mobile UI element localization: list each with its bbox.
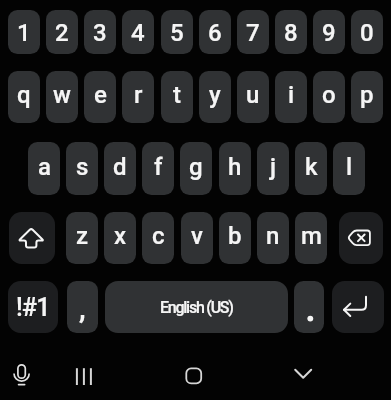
staticText: l (346, 153, 353, 181)
staticText: 7 (246, 19, 260, 47)
button[interactable]: j (257, 142, 289, 195)
button[interactable]: !#1 (8, 281, 58, 333)
staticText: 0 (360, 19, 374, 47)
staticText: t (173, 81, 181, 109)
staticText: s (76, 153, 89, 181)
staticText: !#1 (16, 293, 50, 322)
button[interactable]: 8 (275, 10, 307, 54)
button[interactable]: r (122, 71, 154, 123)
button[interactable]: m (295, 212, 327, 264)
button[interactable]: o (313, 71, 345, 123)
button[interactable]: e (84, 71, 116, 123)
button[interactable]: y (199, 71, 231, 123)
button[interactable] (6, 360, 38, 392)
button[interactable]: 7 (237, 10, 269, 54)
staticText: p (360, 81, 374, 109)
button[interactable]: 1 (8, 10, 40, 54)
button[interactable]: p (351, 71, 383, 123)
button[interactable] (339, 212, 383, 264)
staticText: a (38, 153, 51, 181)
staticText: g (189, 153, 203, 181)
button[interactable]: k (295, 142, 327, 195)
button[interactable]: b (219, 212, 251, 264)
button[interactable] (332, 281, 384, 333)
staticText: 6 (208, 19, 222, 47)
staticText: b (228, 222, 242, 250)
button[interactable] (294, 281, 324, 333)
button[interactable]: h (219, 142, 251, 195)
staticText: 9 (322, 19, 336, 47)
button[interactable] (287, 360, 319, 392)
staticText: w (53, 81, 71, 109)
button[interactable]: q (8, 71, 40, 123)
button[interactable]: s (66, 142, 98, 195)
staticText: h (228, 153, 242, 181)
button[interactable]: v (181, 212, 213, 264)
button[interactable]: x (104, 212, 136, 264)
staticText: English (US) (160, 298, 233, 317)
button[interactable] (9, 212, 55, 264)
staticText: n (266, 222, 280, 250)
button[interactable]: c (142, 212, 174, 264)
staticText: y (209, 81, 221, 109)
staticText: z (76, 222, 89, 250)
staticText: e (94, 81, 107, 109)
button[interactable] (178, 360, 210, 392)
button[interactable]: a (28, 142, 60, 195)
button[interactable]: f (142, 142, 174, 195)
button[interactable]: 2 (46, 10, 78, 54)
staticText: m (301, 222, 322, 250)
staticText: o (322, 81, 336, 109)
button[interactable]: 9 (313, 10, 345, 54)
button[interactable]: d (104, 142, 136, 195)
button[interactable] (68, 360, 100, 392)
staticText: i (288, 81, 295, 109)
staticText: v (191, 222, 203, 250)
button[interactable]: 0 (351, 10, 383, 54)
button[interactable]: t (161, 71, 193, 123)
staticText: c (152, 222, 165, 250)
button[interactable]: 4 (122, 10, 154, 54)
button[interactable]: z (66, 212, 98, 264)
button[interactable]: 3 (84, 10, 116, 54)
button[interactable]: i (275, 71, 307, 123)
staticText: 4 (131, 19, 145, 47)
button[interactable]: 5 (161, 10, 193, 54)
staticText: f (154, 153, 163, 181)
staticText: 2 (55, 19, 69, 47)
staticText: 3 (93, 19, 107, 47)
button[interactable]: l (333, 142, 365, 195)
staticText: r (134, 81, 143, 109)
button[interactable]: u (237, 71, 269, 123)
staticText: , (79, 290, 86, 325)
staticText: k (305, 153, 318, 181)
button[interactable]: English (US) (105, 281, 288, 333)
staticText: 1 (17, 19, 31, 47)
staticText: q (17, 81, 31, 109)
button[interactable]: n (257, 212, 289, 264)
button[interactable]: 6 (199, 10, 231, 54)
staticText: 5 (170, 19, 184, 47)
button[interactable]: g (180, 142, 212, 195)
staticText: 8 (284, 19, 298, 47)
staticText: x (114, 222, 127, 250)
button[interactable]: w (46, 71, 78, 123)
staticText: d (113, 153, 127, 181)
button[interactable]: , (67, 281, 98, 333)
staticText: u (246, 81, 260, 109)
staticText: j (270, 153, 277, 181)
